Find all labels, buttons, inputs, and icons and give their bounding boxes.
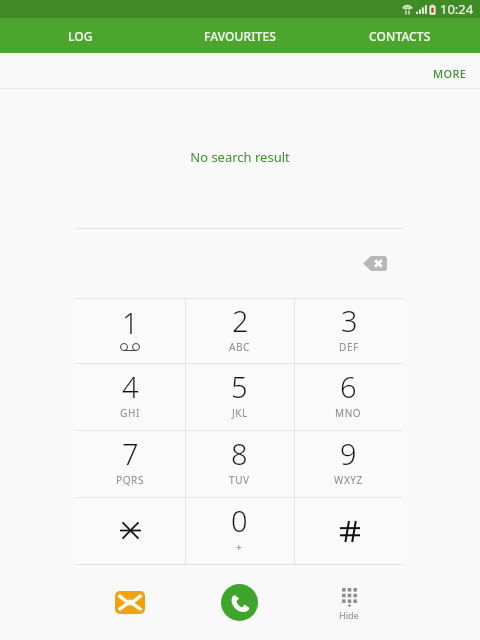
staticText: LOG [68,28,93,44]
button[interactable]: Call [185,565,294,640]
staticText: + [236,540,243,554]
button[interactable]: 6 [294,364,403,430]
staticText: MNO [335,406,362,420]
button[interactable]: 9 [294,431,403,497]
staticText: CONTACTS [369,28,431,44]
button[interactable]: 3 [294,299,403,363]
staticText: FAVOURITES [204,28,276,44]
staticText: Hide [339,609,359,621]
staticText: 0 [231,501,248,540]
staticText: No search result [0,148,480,166]
button[interactable]: 0 [185,498,294,564]
button[interactable]: 1 [75,299,185,363]
staticText: 7 [122,434,139,473]
staticText: 1 [122,303,139,342]
staticText: 8 [231,434,248,473]
button[interactable]: 7 [75,431,185,497]
button[interactable]: 4 [75,364,185,430]
staticText: 4 [122,367,139,406]
staticText: MORE [433,66,467,81]
button[interactable]: 5 [185,364,294,430]
staticText: GHI [120,406,140,420]
staticText: PQRS [116,473,144,487]
button[interactable]: 8 [185,431,294,497]
button[interactable]: CONTACTS [320,18,480,53]
button[interactable]: Message [75,565,185,640]
staticText: JKL [232,406,248,420]
staticText: ABC [229,340,251,354]
staticText: 9 [340,434,357,473]
staticText: WXYZ [334,473,363,487]
button[interactable]: Backspace [356,248,394,278]
staticText: DEF [339,340,359,354]
button[interactable] [75,498,185,564]
button[interactable]: LOG [0,18,160,53]
staticText: 5 [231,367,248,406]
staticText: 3 [341,301,358,340]
button[interactable]: FAVOURITES [160,18,320,53]
staticText: 10:24 [440,0,474,18]
staticText: 2 [232,301,249,340]
button[interactable]: 2 [185,299,294,363]
staticText: 6 [340,367,357,406]
button[interactable] [294,498,403,564]
button[interactable]: Hide keypad [294,565,403,640]
staticText: TUV [229,473,250,487]
button[interactable]: MORE [433,53,467,89]
